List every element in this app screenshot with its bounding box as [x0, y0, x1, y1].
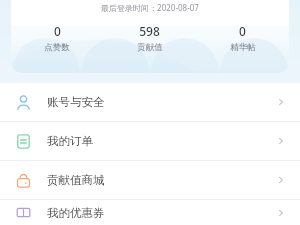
other: Open — [276, 175, 286, 185]
button[interactable]: 我的订单 — [0, 122, 300, 160]
other: Open — [276, 208, 286, 218]
staticText: 我的订单 — [47, 134, 276, 148]
staticText: 精华帖 — [230, 42, 256, 53]
staticText: 我的优惠券 — [47, 206, 276, 220]
staticText: 贡献值商城 — [47, 173, 276, 187]
staticText: 贡献值 — [137, 42, 163, 53]
staticText: 账号与安全 — [47, 95, 276, 109]
staticText: 0 — [54, 23, 61, 39]
other: Open — [276, 136, 286, 146]
staticText: 598 — [139, 23, 160, 39]
staticText: 点赞数 — [44, 42, 70, 53]
staticText: 最后登录时间：2020-08-07 — [11, 2, 289, 13]
button[interactable]: 贡献值商城 — [0, 161, 300, 199]
staticText: 0 — [239, 23, 246, 39]
button[interactable]: 我的优惠券 — [0, 200, 300, 225]
other: Open — [276, 97, 286, 107]
button[interactable]: 账号与安全 — [0, 83, 300, 121]
